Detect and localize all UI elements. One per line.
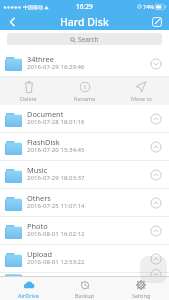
button[interactable]: Expand: [149, 168, 163, 182]
button[interactable]: Setting: [113, 277, 169, 300]
button[interactable]: Music: [0, 161, 169, 188]
button[interactable]: Document: [0, 105, 169, 132]
staticText: Others: [27, 193, 51, 203]
staticText: 2016-07-20 15:34:45: [27, 145, 85, 153]
button[interactable]: Rename: [57, 77, 113, 105]
staticText: 2016-08-01 12:53:22: [27, 257, 85, 265]
staticText: Setting: [132, 292, 151, 299]
button[interactable]: AirDrive: [0, 277, 57, 300]
button[interactable]: Delete: [0, 77, 57, 105]
staticText: 2016-07-25 11:07:14: [27, 201, 85, 209]
staticText: Move to: [131, 95, 152, 102]
staticText: 74%: [143, 3, 154, 10]
button[interactable]: Expand: [149, 196, 163, 210]
staticText: Hard Disk: [60, 15, 109, 29]
staticText: 34three: [27, 54, 54, 64]
button[interactable]: Backup: [57, 277, 113, 300]
button[interactable]: Photo: [0, 217, 169, 244]
staticText: Search: [78, 35, 99, 44]
button[interactable]: Expand: [149, 112, 163, 126]
staticText: Delete: [20, 95, 37, 102]
button[interactable]: Edit: [145, 13, 169, 30]
staticText: 中国移动: [23, 4, 43, 10]
staticText: 2016-08-01 16:02:12: [27, 229, 85, 237]
button[interactable]: Upload: [0, 245, 169, 272]
staticText: 2016-07-28 18:01:16: [27, 117, 85, 125]
staticText: Rename: [74, 95, 96, 102]
button[interactable]: FlashDisk: [0, 133, 169, 160]
staticText: Upload: [27, 249, 53, 259]
button[interactable]: Expand: [149, 224, 163, 238]
button[interactable]: Add: [140, 256, 167, 283]
button[interactable]: Expand: [149, 140, 163, 154]
button[interactable]: Move to: [113, 77, 169, 105]
button[interactable]: Back: [0, 13, 24, 30]
staticText: Photo: [27, 221, 48, 231]
button[interactable]: Expand: [149, 273, 163, 276]
staticText: 2016-07-29 16:29:46: [27, 62, 85, 70]
staticText: 2016-07-29 18:03:37: [27, 173, 85, 181]
staticText: Document: [27, 109, 64, 119]
button[interactable]: Expand: [149, 252, 163, 266]
staticText: Video: [27, 272, 47, 275]
staticText: Backup: [75, 292, 95, 299]
staticText: 16:29: [76, 2, 93, 11]
staticText: AirDrive: [18, 292, 39, 299]
staticText: FlashDisk: [27, 137, 60, 147]
button[interactable]: Collapse: [149, 57, 163, 71]
button[interactable]: Others: [0, 189, 169, 216]
button[interactable]: Search: [7, 33, 162, 45]
button[interactable]: Video: [0, 273, 169, 276]
button[interactable]: 34three: [0, 48, 169, 76]
staticText: Music: [27, 165, 48, 175]
